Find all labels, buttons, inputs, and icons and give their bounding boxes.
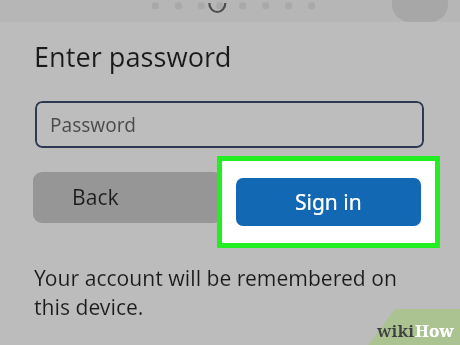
staticText: Your account will be remembered on (34, 264, 397, 293)
button[interactable]: Back (33, 172, 223, 223)
staticText: Back (72, 183, 119, 212)
staticText: Password (50, 112, 136, 138)
staticText: Enter password (34, 38, 232, 75)
staticText: How (415, 319, 454, 342)
staticText: this device. (34, 293, 144, 322)
button[interactable]: Password (35, 101, 424, 148)
button[interactable]: Sign in (236, 178, 421, 226)
staticText: Sign in (295, 188, 362, 217)
staticText: wiki (377, 319, 415, 342)
